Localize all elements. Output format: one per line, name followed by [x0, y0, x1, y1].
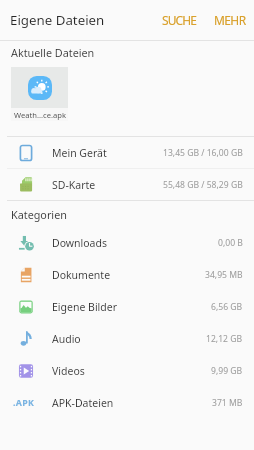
other: Eigene Bilder — [18, 299, 34, 315]
staticText: APK-Dateien — [52, 396, 114, 410]
button[interactable]: Mein Gerät — [0, 137, 254, 168]
staticText: Aktuelle Dateien — [11, 45, 95, 60]
staticText: 13,45 GB / 16,00 GB — [163, 147, 243, 159]
button[interactable]: Audio — [0, 323, 254, 355]
staticText: Audio — [52, 332, 81, 346]
staticText: 371 MB — [212, 397, 243, 409]
button[interactable]: Eigene Bilder — [0, 291, 254, 323]
other: Videos — [18, 363, 34, 379]
staticText: 9,99 GB — [211, 365, 243, 377]
other: Downloads — [18, 235, 34, 251]
staticText: Mein Gerät — [52, 146, 107, 160]
staticText: Eigene Bilder — [52, 300, 118, 314]
button[interactable]: Weath...ce.apk — [11, 67, 68, 121]
staticText: Eigene Dateien — [10, 11, 105, 29]
staticText: SD-Karte — [52, 178, 96, 192]
button[interactable]: MEHR — [203, 3, 254, 37]
staticText: SUCHE — [162, 12, 197, 28]
staticText: 0,00 B — [218, 237, 243, 249]
other: Audio — [18, 331, 34, 347]
button[interactable]: Dokumente — [0, 259, 254, 291]
staticText: Downloads — [52, 236, 107, 250]
staticText: 6,56 GB — [211, 301, 243, 313]
button[interactable]: .APK — [0, 387, 254, 419]
staticText: Videos — [52, 364, 85, 378]
staticText: Dokumente — [52, 268, 111, 282]
button[interactable]: Downloads — [0, 227, 254, 259]
staticText: Weath...ce.apk — [14, 110, 66, 120]
other: Mein Gerät — [18, 145, 34, 161]
staticText: Kategorien — [11, 207, 67, 222]
staticText: 12,12 GB — [206, 333, 243, 345]
staticText: .APK — [13, 397, 35, 409]
other: SD-Karte — [18, 177, 34, 193]
staticText: 34,95 MB — [205, 269, 243, 281]
other: Dokumente — [18, 267, 34, 283]
staticText: 55,48 GB / 58,29 GB — [163, 179, 243, 191]
button[interactable]: SUCHE — [156, 3, 203, 37]
staticText: MEHR — [214, 12, 246, 28]
button[interactable]: SD-Karte — [0, 169, 254, 200]
button[interactable]: Videos — [0, 355, 254, 387]
